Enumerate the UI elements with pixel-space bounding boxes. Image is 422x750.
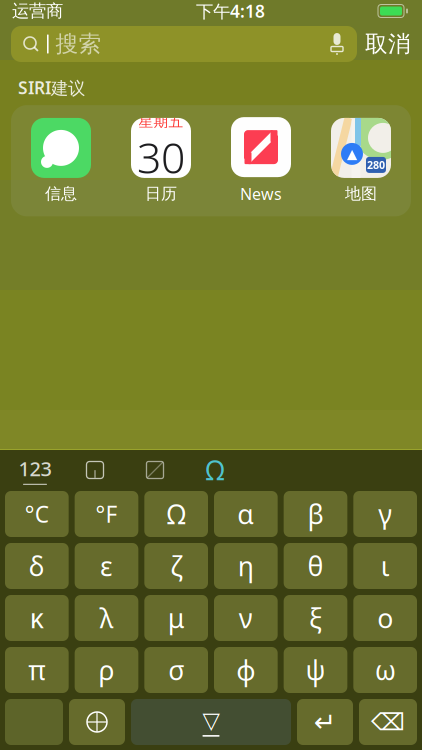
staticText: δ xyxy=(29,548,45,584)
button[interactable]: θ xyxy=(284,543,347,589)
button[interactable]: π xyxy=(5,647,69,693)
button[interactable]: Delete xyxy=(359,699,417,745)
button[interactable]: Return xyxy=(297,699,353,745)
staticText: 运营商 xyxy=(12,0,63,22)
button[interactable]: α xyxy=(214,491,278,537)
staticText: λ xyxy=(99,600,113,636)
staticText: φ xyxy=(236,652,255,688)
staticText: ξ xyxy=(309,600,322,636)
staticText: °C xyxy=(25,499,49,529)
staticText: 取消 xyxy=(365,30,411,58)
button[interactable]: ι xyxy=(353,543,417,589)
button[interactable]: ω xyxy=(353,647,417,693)
button[interactable]: δ xyxy=(5,543,69,589)
button[interactable]: 星期五 xyxy=(111,118,211,204)
staticText: ▲ xyxy=(347,146,357,161)
button[interactable]: φ xyxy=(214,647,278,693)
button[interactable]: 取消 xyxy=(365,26,411,62)
button[interactable]: ζ xyxy=(144,543,208,589)
button[interactable]: 信息 xyxy=(11,118,111,204)
button[interactable]: °F xyxy=(75,491,138,537)
staticText: ζ xyxy=(170,548,182,584)
staticText: ο xyxy=(377,600,393,636)
staticText: 280 xyxy=(367,158,385,172)
button[interactable]: ν xyxy=(214,595,278,641)
button[interactable]: Numbers xyxy=(18,455,52,485)
staticText: 30 xyxy=(137,129,185,185)
staticText: ρ xyxy=(98,652,114,688)
staticText: 搜索 xyxy=(56,30,102,58)
button[interactable]: μ xyxy=(144,595,208,641)
staticText: Ω xyxy=(167,496,186,532)
staticText: α xyxy=(237,496,254,532)
staticText: ψ xyxy=(305,652,325,688)
button[interactable]: σ xyxy=(144,647,208,693)
button[interactable]: ε xyxy=(75,543,138,589)
button[interactable]: News xyxy=(211,117,311,204)
button[interactable]: β xyxy=(284,491,347,537)
button[interactable]: γ xyxy=(353,491,417,537)
staticText: SIRI建议 xyxy=(18,76,85,99)
button[interactable]: Shapes xyxy=(78,455,112,485)
button[interactable]: Shift xyxy=(5,699,63,745)
staticText: News xyxy=(240,183,282,204)
staticText: ⌫ xyxy=(371,708,405,736)
staticText: ▽ xyxy=(202,707,219,733)
staticText: ν xyxy=(239,600,253,636)
staticText: °F xyxy=(95,499,117,529)
staticText: β xyxy=(307,496,323,532)
button[interactable]: η xyxy=(214,543,278,589)
button[interactable]: ▲ xyxy=(311,118,411,204)
button[interactable]: ρ xyxy=(75,647,138,693)
staticText: 地图 xyxy=(345,184,377,204)
button[interactable]: ο xyxy=(353,595,417,641)
button[interactable]: ξ xyxy=(284,595,347,641)
staticText: θ xyxy=(307,548,323,584)
button[interactable]: ψ xyxy=(284,647,347,693)
staticText: κ xyxy=(30,600,44,636)
staticText: π xyxy=(28,652,45,688)
staticText: 信息 xyxy=(45,184,77,204)
staticText: η xyxy=(238,548,254,584)
staticText: ω xyxy=(375,652,396,688)
button[interactable]: λ xyxy=(75,595,138,641)
staticText: 星期五 xyxy=(138,113,183,131)
staticText: γ xyxy=(378,496,392,532)
staticText: ι xyxy=(381,548,390,584)
button[interactable]: Next keyboard xyxy=(69,699,125,745)
button[interactable]: 搜索 xyxy=(11,26,357,62)
button[interactable]: °C xyxy=(5,491,69,537)
button[interactable]: Ω xyxy=(144,491,208,537)
button[interactable]: κ xyxy=(5,595,69,641)
staticText: Ω xyxy=(205,452,224,488)
staticText: ε xyxy=(100,548,113,584)
button[interactable]: Hide keyboard xyxy=(131,699,291,745)
staticText: σ xyxy=(168,652,184,688)
button[interactable]: Symbols xyxy=(198,455,232,485)
staticText: 下午4:18 xyxy=(196,0,265,22)
staticText: 123 xyxy=(18,455,51,482)
staticText: μ xyxy=(168,600,185,636)
button[interactable]: Patterns xyxy=(138,455,172,485)
staticText: 日历 xyxy=(145,184,177,204)
staticText: ↵ xyxy=(314,707,336,737)
